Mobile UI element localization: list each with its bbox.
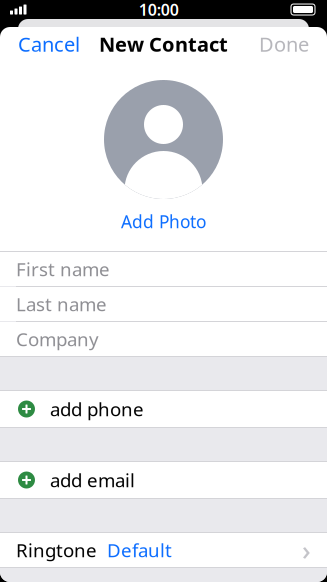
button[interactable]: add phone [0, 391, 327, 427]
button[interactable]: Done [241, 27, 327, 61]
staticText: add email [50, 468, 135, 492]
button[interactable]: Ringtone [0, 533, 327, 567]
staticText: Ringtone [16, 538, 97, 562]
staticText: Cancel [18, 31, 80, 57]
staticText: First name [16, 257, 110, 281]
staticText: New Contact [99, 31, 228, 57]
staticText: 10:00 [139, 0, 179, 20]
staticText: Default [107, 538, 172, 562]
staticText: Done [259, 31, 309, 57]
staticText: add phone [50, 397, 144, 421]
staticText: Last name [16, 292, 107, 316]
button[interactable]: Add Photo [111, 204, 216, 239]
button[interactable]: Cancel [0, 27, 98, 61]
button[interactable]: add email [0, 462, 327, 498]
staticText: Add Photo [121, 210, 206, 233]
staticText: Company [16, 327, 99, 351]
staticText: › [302, 532, 311, 568]
